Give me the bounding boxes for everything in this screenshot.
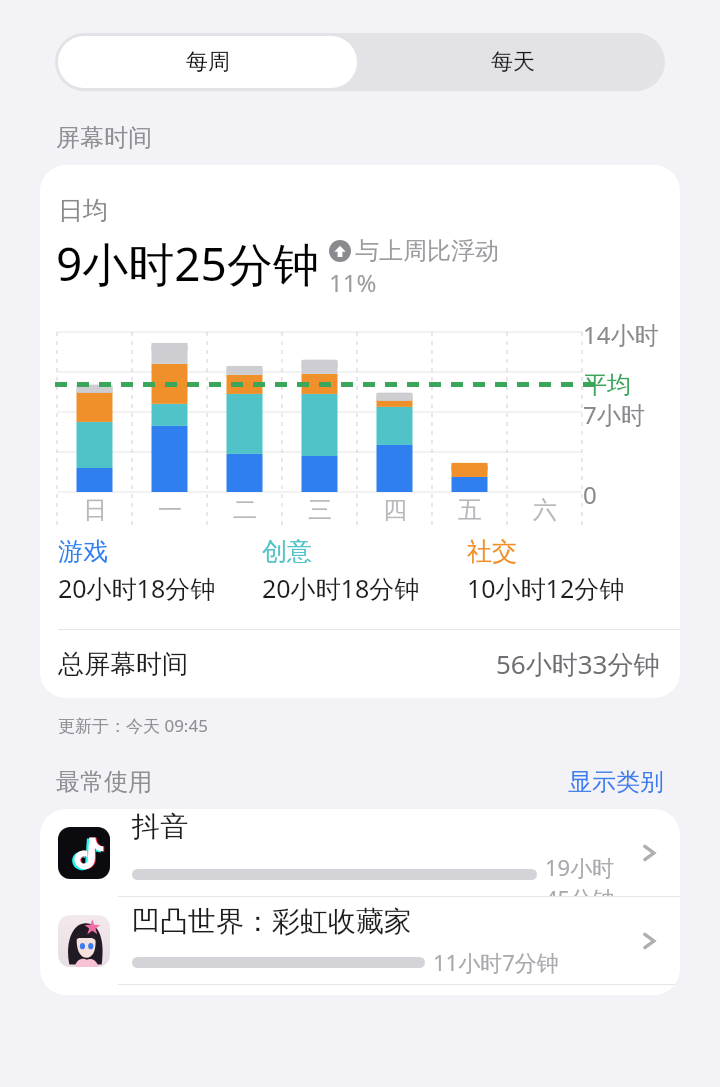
staticText: 19小时45分钟 (545, 852, 628, 896)
staticText: 总屏幕时间 (58, 648, 188, 681)
staticText: 凹凸世界：彩虹收藏家 (132, 904, 412, 939)
staticText: 显示类别 (568, 767, 664, 797)
staticText: 9小时25分钟 (56, 232, 319, 295)
staticText: 10小时12分钟 (467, 571, 625, 605)
staticText: 每天 (491, 48, 535, 76)
staticText: 56小时33分钟 (496, 646, 660, 682)
staticText: 日 (83, 495, 107, 525)
button[interactable]: 凹凸世界：彩虹收藏家 (40, 897, 680, 984)
staticText: 一 (158, 495, 182, 525)
staticText: 日均 (58, 195, 108, 226)
staticText: 四 (383, 495, 407, 525)
staticText: 更新于：今天 09:45 (58, 714, 208, 737)
staticText: 三 (308, 495, 332, 525)
staticText: 游戏 (58, 536, 108, 567)
button[interactable]: 显示类别 (568, 767, 664, 797)
staticText: 抖音 (132, 809, 188, 844)
staticText: 社交 (467, 536, 517, 567)
staticText: 20小时18分钟 (262, 571, 420, 605)
staticText: 7小时 (583, 398, 645, 431)
staticText: 与上周比浮动 (355, 236, 499, 266)
staticText: 14小时 (583, 318, 659, 351)
staticText: 创意 (262, 536, 312, 567)
staticText: 二 (233, 495, 257, 525)
staticText: 六 (533, 495, 557, 525)
staticText: 每周 (186, 48, 230, 76)
staticText: 最常使用 (56, 767, 152, 797)
staticText: 20小时18分钟 (58, 571, 216, 605)
staticText: 五 (458, 495, 482, 525)
button[interactable]: 每天 (360, 33, 665, 91)
staticText: 11% (329, 266, 377, 299)
button[interactable]: 每周 (58, 36, 357, 88)
other: 查看详情 (634, 838, 664, 868)
staticText: 屏幕时间 (56, 123, 152, 153)
staticText: 平均 (583, 370, 631, 400)
other: 查看详情 (634, 926, 664, 956)
button[interactable]: 抖音 (40, 809, 680, 896)
staticText: 0 (583, 478, 597, 511)
staticText: 11小时7分钟 (433, 947, 628, 977)
